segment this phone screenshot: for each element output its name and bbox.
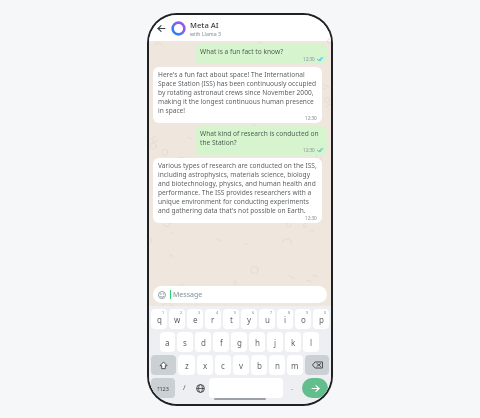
button[interactable]: 7 — [259, 309, 275, 329]
staticText: 12:30 — [303, 147, 315, 153]
button[interactable]: d — [195, 332, 211, 352]
button[interactable]: . — [285, 378, 299, 398]
staticText: 2 — [180, 310, 183, 315]
staticText: i — [284, 314, 287, 325]
staticText: 0 — [324, 310, 327, 315]
staticText: x — [203, 360, 208, 371]
button[interactable]: 5 — [223, 309, 239, 329]
button[interactable]: 6 — [241, 309, 257, 329]
staticText: l — [310, 337, 313, 348]
button[interactable]: Back — [154, 21, 168, 35]
button[interactable]: k — [285, 332, 301, 352]
staticText: with Llama 3 — [190, 30, 221, 37]
staticText: n — [275, 360, 280, 371]
button[interactable]: 2 — [169, 309, 185, 329]
staticText: c — [221, 360, 225, 371]
staticText: o — [301, 314, 306, 325]
button[interactable]: Language — [193, 378, 207, 398]
staticText: 4 — [216, 310, 219, 315]
staticText: v — [239, 360, 244, 371]
staticText: d — [201, 337, 206, 348]
button[interactable]: h — [249, 332, 265, 352]
staticText: Message — [173, 290, 203, 300]
staticText: a — [165, 337, 170, 348]
staticText: r — [211, 314, 215, 325]
button[interactable]: Various types of research are conducted … — [153, 158, 322, 223]
button[interactable]: What is a fun fact to know? — [195, 44, 327, 64]
staticText: . — [291, 383, 293, 393]
button[interactable]: g — [231, 332, 247, 352]
staticText: / — [183, 383, 186, 393]
staticText: q — [157, 314, 162, 325]
button[interactable]: / — [177, 378, 191, 398]
staticText: 12:30 — [305, 215, 317, 221]
button[interactable]: s — [177, 332, 193, 352]
button[interactable]: j — [267, 332, 283, 352]
button[interactable]: Shift — [151, 355, 176, 375]
button[interactable]: b — [251, 355, 267, 375]
staticText: g — [237, 337, 242, 348]
button[interactable]: Here's a fun fact about space! The Inter… — [153, 67, 322, 123]
button[interactable]: l — [303, 332, 319, 352]
staticText: h — [255, 337, 260, 348]
button[interactable]: x — [197, 355, 213, 375]
button[interactable]: Backspace — [305, 355, 329, 375]
button[interactable]: ?123 — [151, 378, 175, 398]
staticText: 1 — [162, 310, 165, 315]
staticText: z — [185, 360, 189, 371]
button[interactable]: n — [269, 355, 285, 375]
button[interactable]: m — [287, 355, 303, 375]
staticText: 5 — [234, 310, 237, 315]
staticText: 12:30 — [303, 56, 315, 62]
button[interactable]: 0 — [313, 309, 329, 329]
staticText: 7 — [270, 310, 273, 315]
staticText: ?123 — [157, 385, 169, 392]
button[interactable]: Meta AI — [190, 20, 325, 37]
staticText: What kind of research is conducted on th… — [200, 129, 323, 147]
staticText: Meta AI — [190, 20, 219, 30]
staticText: 9 — [306, 310, 309, 315]
button[interactable]: 9 — [295, 309, 311, 329]
staticText: 6 — [252, 310, 255, 315]
button[interactable]: c — [215, 355, 231, 375]
button[interactable]: 4 — [205, 309, 221, 329]
button[interactable]: f — [213, 332, 229, 352]
button[interactable]: z — [178, 355, 195, 375]
staticText: p — [319, 314, 324, 325]
button[interactable]: Send — [302, 378, 328, 398]
button[interactable]: 1 — [151, 309, 167, 329]
staticText: 8 — [288, 310, 291, 315]
button[interactable]: a — [160, 332, 175, 352]
staticText: 3 — [198, 310, 201, 315]
staticText: u — [265, 314, 270, 325]
staticText: b — [257, 360, 262, 371]
staticText: What is a fun fact to know? — [200, 47, 284, 56]
staticText: m — [291, 360, 299, 371]
staticText: f — [220, 337, 223, 348]
staticText: k — [291, 337, 296, 348]
button[interactable]: 3 — [187, 309, 203, 329]
staticText: Various types of research are conducted … — [158, 161, 317, 215]
staticText: s — [183, 337, 187, 348]
staticText: t — [230, 314, 233, 325]
staticText: 12:30 — [305, 115, 317, 121]
staticText: w — [174, 314, 181, 325]
button[interactable]: v — [233, 355, 249, 375]
staticText: y — [247, 314, 252, 325]
button[interactable]: 8 — [277, 309, 293, 329]
button[interactable]: Message — [153, 286, 327, 303]
staticText: j — [274, 337, 277, 348]
staticText: e — [193, 314, 198, 325]
button[interactable]: What kind of research is conducted on th… — [195, 126, 327, 155]
staticText: Here's a fun fact about space! The Inter… — [158, 70, 317, 115]
